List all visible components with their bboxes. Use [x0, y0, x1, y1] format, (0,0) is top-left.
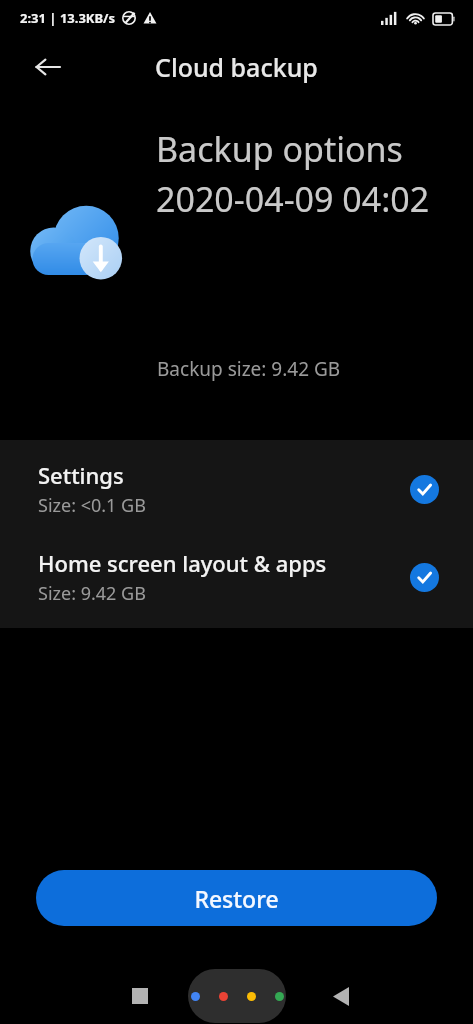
button[interactable]: Back	[319, 974, 363, 1018]
staticText: Home screen layout & apps	[38, 548, 327, 578]
button[interactable]: Home screen layout & apps	[0, 544, 473, 610]
button[interactable]: Settings	[0, 456, 473, 522]
button[interactable]: Recent apps	[118, 974, 162, 1018]
staticText: Cloud backup	[155, 50, 318, 84]
button[interactable]: Restore	[36, 870, 437, 926]
button[interactable]: Home	[188, 969, 286, 1023]
staticText: Size: 9.42 GB	[38, 581, 146, 606]
staticText: Size: <0.1 GB	[38, 493, 146, 518]
button[interactable]: Back	[24, 43, 72, 91]
button[interactable]: Selected	[410, 475, 439, 504]
staticText: Backup size: 9.42 GB	[157, 356, 341, 382]
staticText: Restore	[194, 883, 279, 914]
button[interactable]: Selected	[410, 563, 439, 592]
staticText: Settings	[38, 460, 124, 490]
staticText: 2:31 | 13.3KB/s	[20, 9, 116, 27]
staticText: Backup options 2020-04-09 04:02	[156, 126, 446, 222]
